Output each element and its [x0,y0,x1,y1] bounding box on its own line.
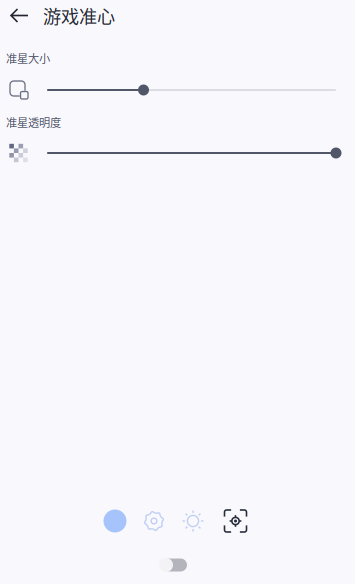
button[interactable]: Enable crosshair [149,549,197,581]
button[interactable]: 游戏准心 [35,0,123,35]
staticText: 游戏准心 [43,2,115,29]
staticText: 准星大小 [6,50,50,66]
button[interactable]: Centre crosshair [212,501,251,541]
button[interactable]: Crosshair colour [95,501,134,540]
button[interactable]: Back [0,1,35,30]
button[interactable]: Crosshair style [134,501,173,540]
button[interactable]: Brightness [173,501,212,540]
staticText: 准星透明度 [6,114,61,130]
